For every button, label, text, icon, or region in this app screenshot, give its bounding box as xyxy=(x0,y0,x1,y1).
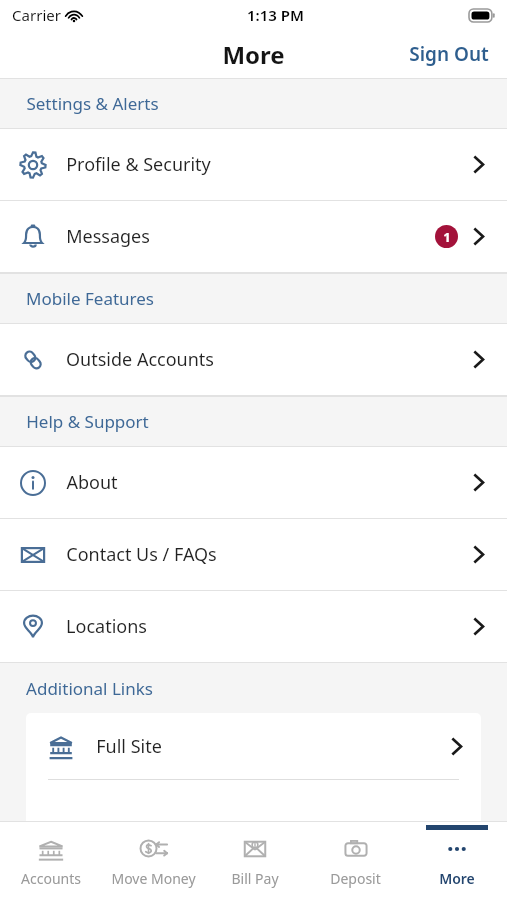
button[interactable]: Bill Pay xyxy=(204,822,305,900)
staticText: Mobile Features xyxy=(26,287,154,310)
staticText: Deposit xyxy=(330,869,381,888)
staticText: 1:13 PM xyxy=(247,5,304,25)
staticText: Sign Out xyxy=(409,41,489,67)
staticText: Bill Pay xyxy=(231,869,279,888)
staticText: Settings & Alerts xyxy=(26,92,159,115)
button[interactable]: Move Money xyxy=(102,822,204,900)
staticText: Full Site xyxy=(96,734,162,759)
staticText: 1 xyxy=(443,228,451,246)
staticText: Carrier xyxy=(12,5,61,25)
button[interactable]: Accounts xyxy=(0,822,102,900)
button[interactable]: Deposit xyxy=(305,822,406,900)
staticText: More xyxy=(439,869,475,888)
staticText: Additional Links xyxy=(26,677,153,700)
staticText: Move Money xyxy=(111,869,196,888)
staticText: Help & Support xyxy=(26,410,149,433)
staticText: Contact Us / FAQs xyxy=(66,542,217,567)
staticText: About xyxy=(66,470,118,495)
button[interactable]: Locations xyxy=(0,591,507,662)
button[interactable]: More xyxy=(406,822,507,900)
button[interactable]: Profile & Security xyxy=(0,129,507,200)
staticText: Accounts xyxy=(21,869,81,888)
button[interactable]: About xyxy=(0,447,507,518)
staticText: Messages xyxy=(66,224,150,249)
button[interactable]: Outside Accounts xyxy=(0,324,507,395)
button[interactable]: Sign Out xyxy=(391,33,507,75)
button[interactable]: Contact Us / FAQs xyxy=(0,519,507,590)
button[interactable]: Messages xyxy=(0,201,507,272)
staticText: Outside Accounts xyxy=(66,347,214,372)
staticText: Profile & Security xyxy=(66,152,211,177)
staticText: Locations xyxy=(66,614,147,639)
button[interactable]: Full Site xyxy=(26,713,481,779)
staticText: More xyxy=(222,38,285,71)
